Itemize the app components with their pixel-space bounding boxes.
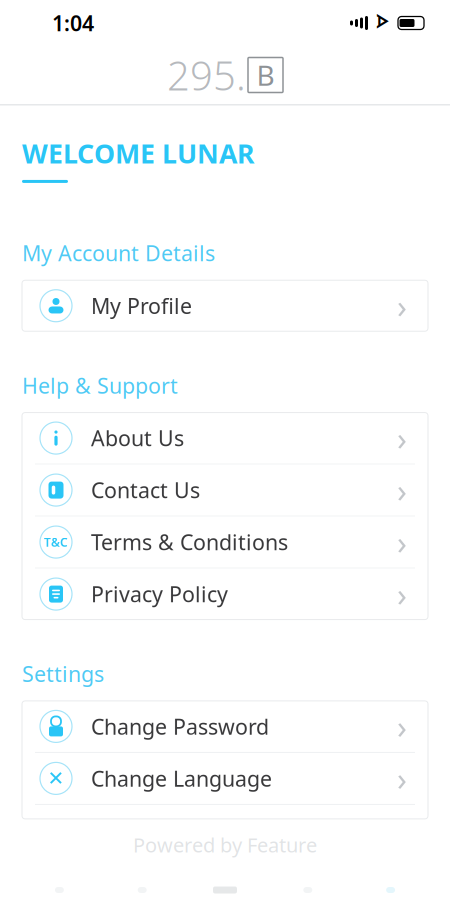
staticText: ✕: [47, 767, 64, 790]
button[interactable]: Account: [349, 884, 432, 896]
staticText: Help & Support: [22, 371, 178, 399]
staticText: ›: [397, 521, 407, 563]
button[interactable]: Change Password: [22, 701, 428, 752]
staticText: B: [256, 56, 274, 94]
button[interactable]: Scan: [184, 884, 266, 896]
staticText: Terms & Conditions: [91, 528, 288, 556]
staticText: ᗌ: [376, 14, 389, 31]
staticText: Contact Us: [91, 476, 200, 504]
staticText: ›: [397, 417, 407, 459]
staticText: My Account Details: [22, 239, 215, 267]
staticText: 1:04: [52, 9, 94, 37]
staticText: Change Language: [91, 764, 272, 792]
staticText: Change Password: [91, 712, 269, 740]
staticText: 295.: [167, 48, 246, 101]
staticText: My Profile: [91, 292, 192, 320]
button[interactable]: ✕: [22, 753, 428, 804]
staticText: Settings: [22, 660, 104, 688]
staticText: T&C: [44, 534, 68, 550]
staticText: ›: [397, 284, 407, 327]
button[interactable]: About Us: [22, 413, 428, 464]
button[interactable]: Contact Us: [22, 465, 428, 516]
staticText: WELCOME LUNAR: [22, 135, 254, 171]
button[interactable]: T&C: [22, 517, 428, 568]
button[interactable]: Privacy Policy: [22, 569, 428, 620]
staticText: ›: [397, 757, 407, 800]
button[interactable]: My Profile: [22, 280, 428, 331]
staticText: ›: [397, 705, 407, 748]
staticText: ›: [397, 469, 407, 511]
staticText: Privacy Policy: [91, 580, 228, 608]
staticText: ›: [397, 573, 407, 615]
staticText: Powered by Feature: [133, 831, 317, 858]
staticText: About Us: [91, 424, 184, 452]
button[interactable]: More settings: [22, 805, 428, 819]
